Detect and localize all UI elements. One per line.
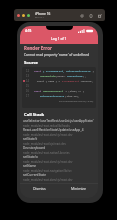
staticText: 14 (26, 79, 30, 83)
staticText: iPhone 16 (35, 12, 51, 16)
staticText: node_modules/react-navigation/lib/src (23, 169, 72, 173)
staticText: Dev.storyboard (23, 146, 46, 150)
staticText: React.useEffect/onStateUpdate/useApp_4 (23, 128, 84, 132)
button[interactable]: setState/o (20, 155, 98, 164)
staticText: const (34, 69, 43, 72)
staticText: setCurrentState (23, 173, 46, 177)
staticText: Source (24, 60, 39, 66)
button[interactable]: Dev.storyboard (20, 146, 98, 155)
staticText: node_modules/react-dom/cjs/react.dev (23, 133, 73, 137)
staticText: useAppState (40, 74, 56, 77)
staticText: (props. (56, 74, 67, 77)
button[interactable]: Dismiss (20, 184, 59, 193)
button[interactable]: useSelector/useTextRect/useList.js/useAp… (20, 119, 98, 128)
staticText: = (item) => { (64, 89, 85, 92)
button[interactable]: Close window (17, 14, 20, 17)
staticText: node_modules/react-native/Libraries (23, 151, 70, 155)
staticText: 13 (26, 74, 30, 78)
button[interactable]: Rotate device (78, 11, 85, 20)
staticText: } = (91, 69, 96, 72)
staticText: 17 (26, 94, 30, 98)
staticText: node_modules/react/cjs/react.dev (23, 142, 66, 146)
staticText: isLoadedList (62, 79, 80, 82)
staticText: 15 (26, 84, 30, 88)
staticText: setState/t (23, 137, 38, 141)
staticText: src/components/App.js (15:40) (59, 99, 94, 102)
button[interactable]: setName (20, 164, 98, 173)
staticText: setCurrentProfile (34, 94, 65, 97)
staticText: 16 (26, 89, 30, 93)
staticText: setName (23, 164, 37, 168)
staticText: useSelector/useTextRect/useList.js/useAp… (23, 119, 98, 123)
staticText: Render Error (24, 45, 52, 51)
button[interactable]: Zoom window (27, 14, 30, 17)
button[interactable]: Screenshot (87, 11, 94, 20)
staticText: handleOnSelect (43, 89, 64, 92)
staticText: { isLoadedList, setCurrentProfile (43, 69, 91, 72)
staticText: 4:15 (25, 29, 32, 33)
staticText: const (34, 89, 43, 92)
button[interactable]: setCurrentState (20, 173, 98, 182)
staticText: Cannot read property 'name' of undefined (24, 52, 90, 56)
staticText: const { name } = (34, 79, 62, 82)
staticText: iOS 18.1 (35, 16, 44, 19)
staticText: Log 1 of 1 (51, 36, 67, 40)
staticText: (item.id) (65, 94, 78, 97)
staticText: currentUser (67, 74, 83, 77)
staticText: node_modules/react-dom/cjs/react.dev (23, 160, 73, 164)
button[interactable]: Minimize (59, 184, 98, 193)
staticText: setState/o (23, 155, 38, 159)
staticText: Dismiss (33, 186, 46, 191)
button[interactable]: React.useEffect/onStateUpdate/useApp_4 (20, 128, 98, 137)
staticText: Call Stack (24, 112, 45, 118)
button[interactable]: Share (96, 11, 103, 20)
staticText: ; (78, 94, 80, 97)
staticText: node_modules/react-redux/lib/hooks (23, 124, 70, 128)
staticText: ); (83, 74, 86, 77)
staticText: Minimize (71, 186, 86, 191)
staticText: node_modules/react-dom/cjs/react.dev (23, 178, 73, 182)
staticText: .profile; (80, 79, 93, 82)
button[interactable]: Minimize window (22, 14, 25, 17)
staticText: 12 (26, 69, 30, 73)
button[interactable]: setState/t (20, 137, 98, 146)
